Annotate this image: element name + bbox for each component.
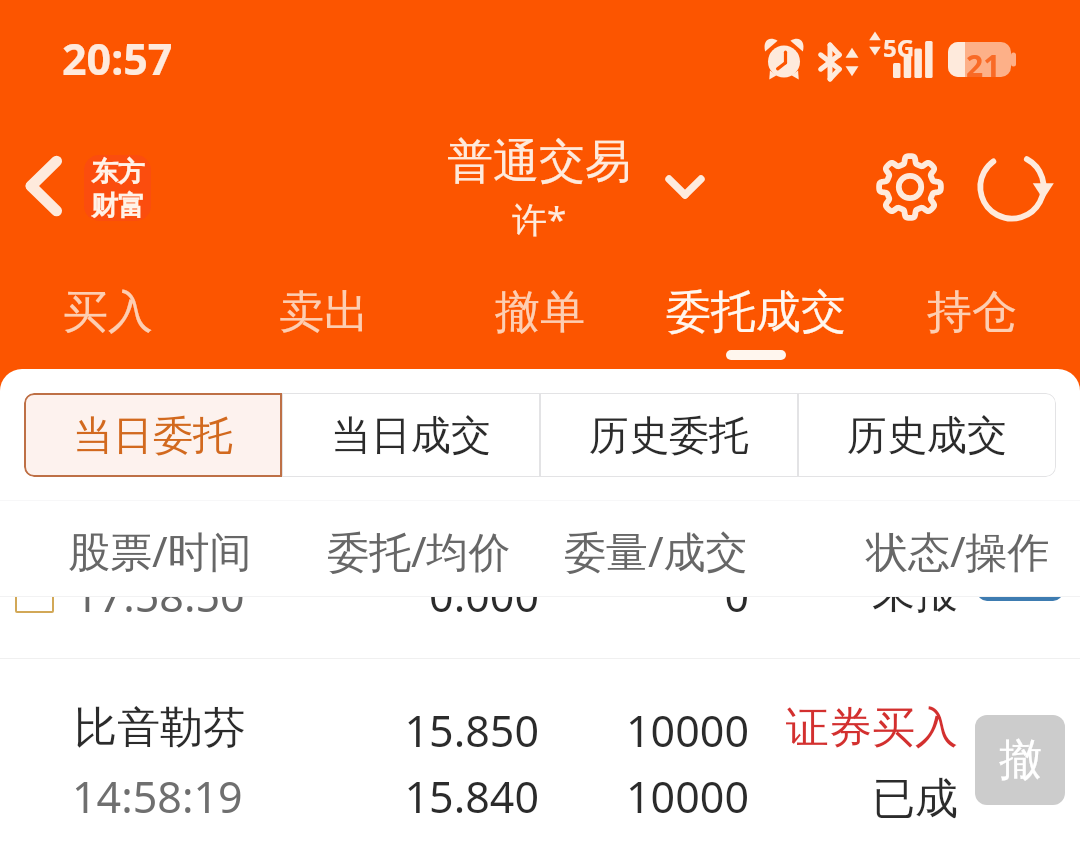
- button[interactable]: 持仓: [864, 270, 1080, 369]
- staticText: 持仓: [927, 284, 1017, 341]
- button[interactable]: Cancel order: [977, 596, 1063, 601]
- button[interactable]: 普通交易: [447, 133, 631, 243]
- staticText: 当日委托: [73, 410, 233, 460]
- staticText: 买入: [63, 284, 153, 341]
- staticText: 历史委托: [589, 410, 749, 460]
- staticText: 0.000: [239, 596, 539, 625]
- button[interactable]: Cancel order: [0, 596, 1080, 658]
- button[interactable]: 历史成交: [798, 393, 1056, 477]
- button[interactable]: 比音勒芬: [0, 659, 1080, 819]
- staticText: 委量/成交: [564, 522, 748, 579]
- staticText: 14:58:19: [72, 767, 243, 826]
- staticText: 21: [966, 45, 1001, 86]
- button[interactable]: Switch account: [655, 157, 715, 217]
- button[interactable]: 当日成交: [282, 393, 540, 477]
- staticText: 当日成交: [331, 410, 491, 460]
- staticText: 东方: [91, 155, 145, 189]
- staticText: 10000: [549, 701, 749, 760]
- button[interactable]: Settings: [874, 151, 946, 223]
- staticText: 证券买入: [758, 701, 958, 755]
- staticText: 0: [549, 596, 749, 625]
- staticText: 撤单: [495, 284, 585, 341]
- staticText: 许*: [512, 195, 567, 243]
- staticText: 10000: [549, 767, 749, 826]
- staticText: 委托/均价: [327, 522, 511, 579]
- staticText: 委托成交: [666, 284, 846, 341]
- staticText: 17:58:50: [74, 596, 245, 625]
- staticText: 状态/操作: [866, 522, 1050, 579]
- staticText: 财富: [91, 189, 145, 221]
- button[interactable]: 买入: [0, 270, 216, 369]
- staticText: 普通交易: [447, 133, 631, 191]
- button[interactable]: 当日委托: [24, 393, 282, 477]
- button[interactable]: 委托成交: [648, 270, 864, 369]
- staticText: 5G: [883, 31, 915, 64]
- button[interactable]: East Money: [84, 155, 151, 221]
- button[interactable]: Refresh: [979, 151, 1063, 223]
- staticText: 已成: [758, 772, 958, 826]
- button[interactable]: 撤单: [432, 270, 648, 369]
- staticText: 20:57: [62, 29, 173, 88]
- button[interactable]: Back: [13, 150, 73, 222]
- staticText: 15.840: [239, 767, 539, 826]
- button[interactable]: 历史委托: [540, 393, 798, 477]
- button[interactable]: Cancel order: [975, 715, 1065, 805]
- button[interactable]: 卖出: [216, 270, 432, 369]
- staticText: 比音勒芬: [74, 701, 246, 755]
- staticText: 历史成交: [847, 410, 1007, 460]
- staticText: 撤: [999, 733, 1042, 787]
- staticText: 未报: [758, 596, 958, 620]
- staticText: 卖出: [279, 284, 369, 341]
- staticText: 15.850: [239, 701, 539, 760]
- staticText: 股票/时间: [68, 522, 252, 579]
